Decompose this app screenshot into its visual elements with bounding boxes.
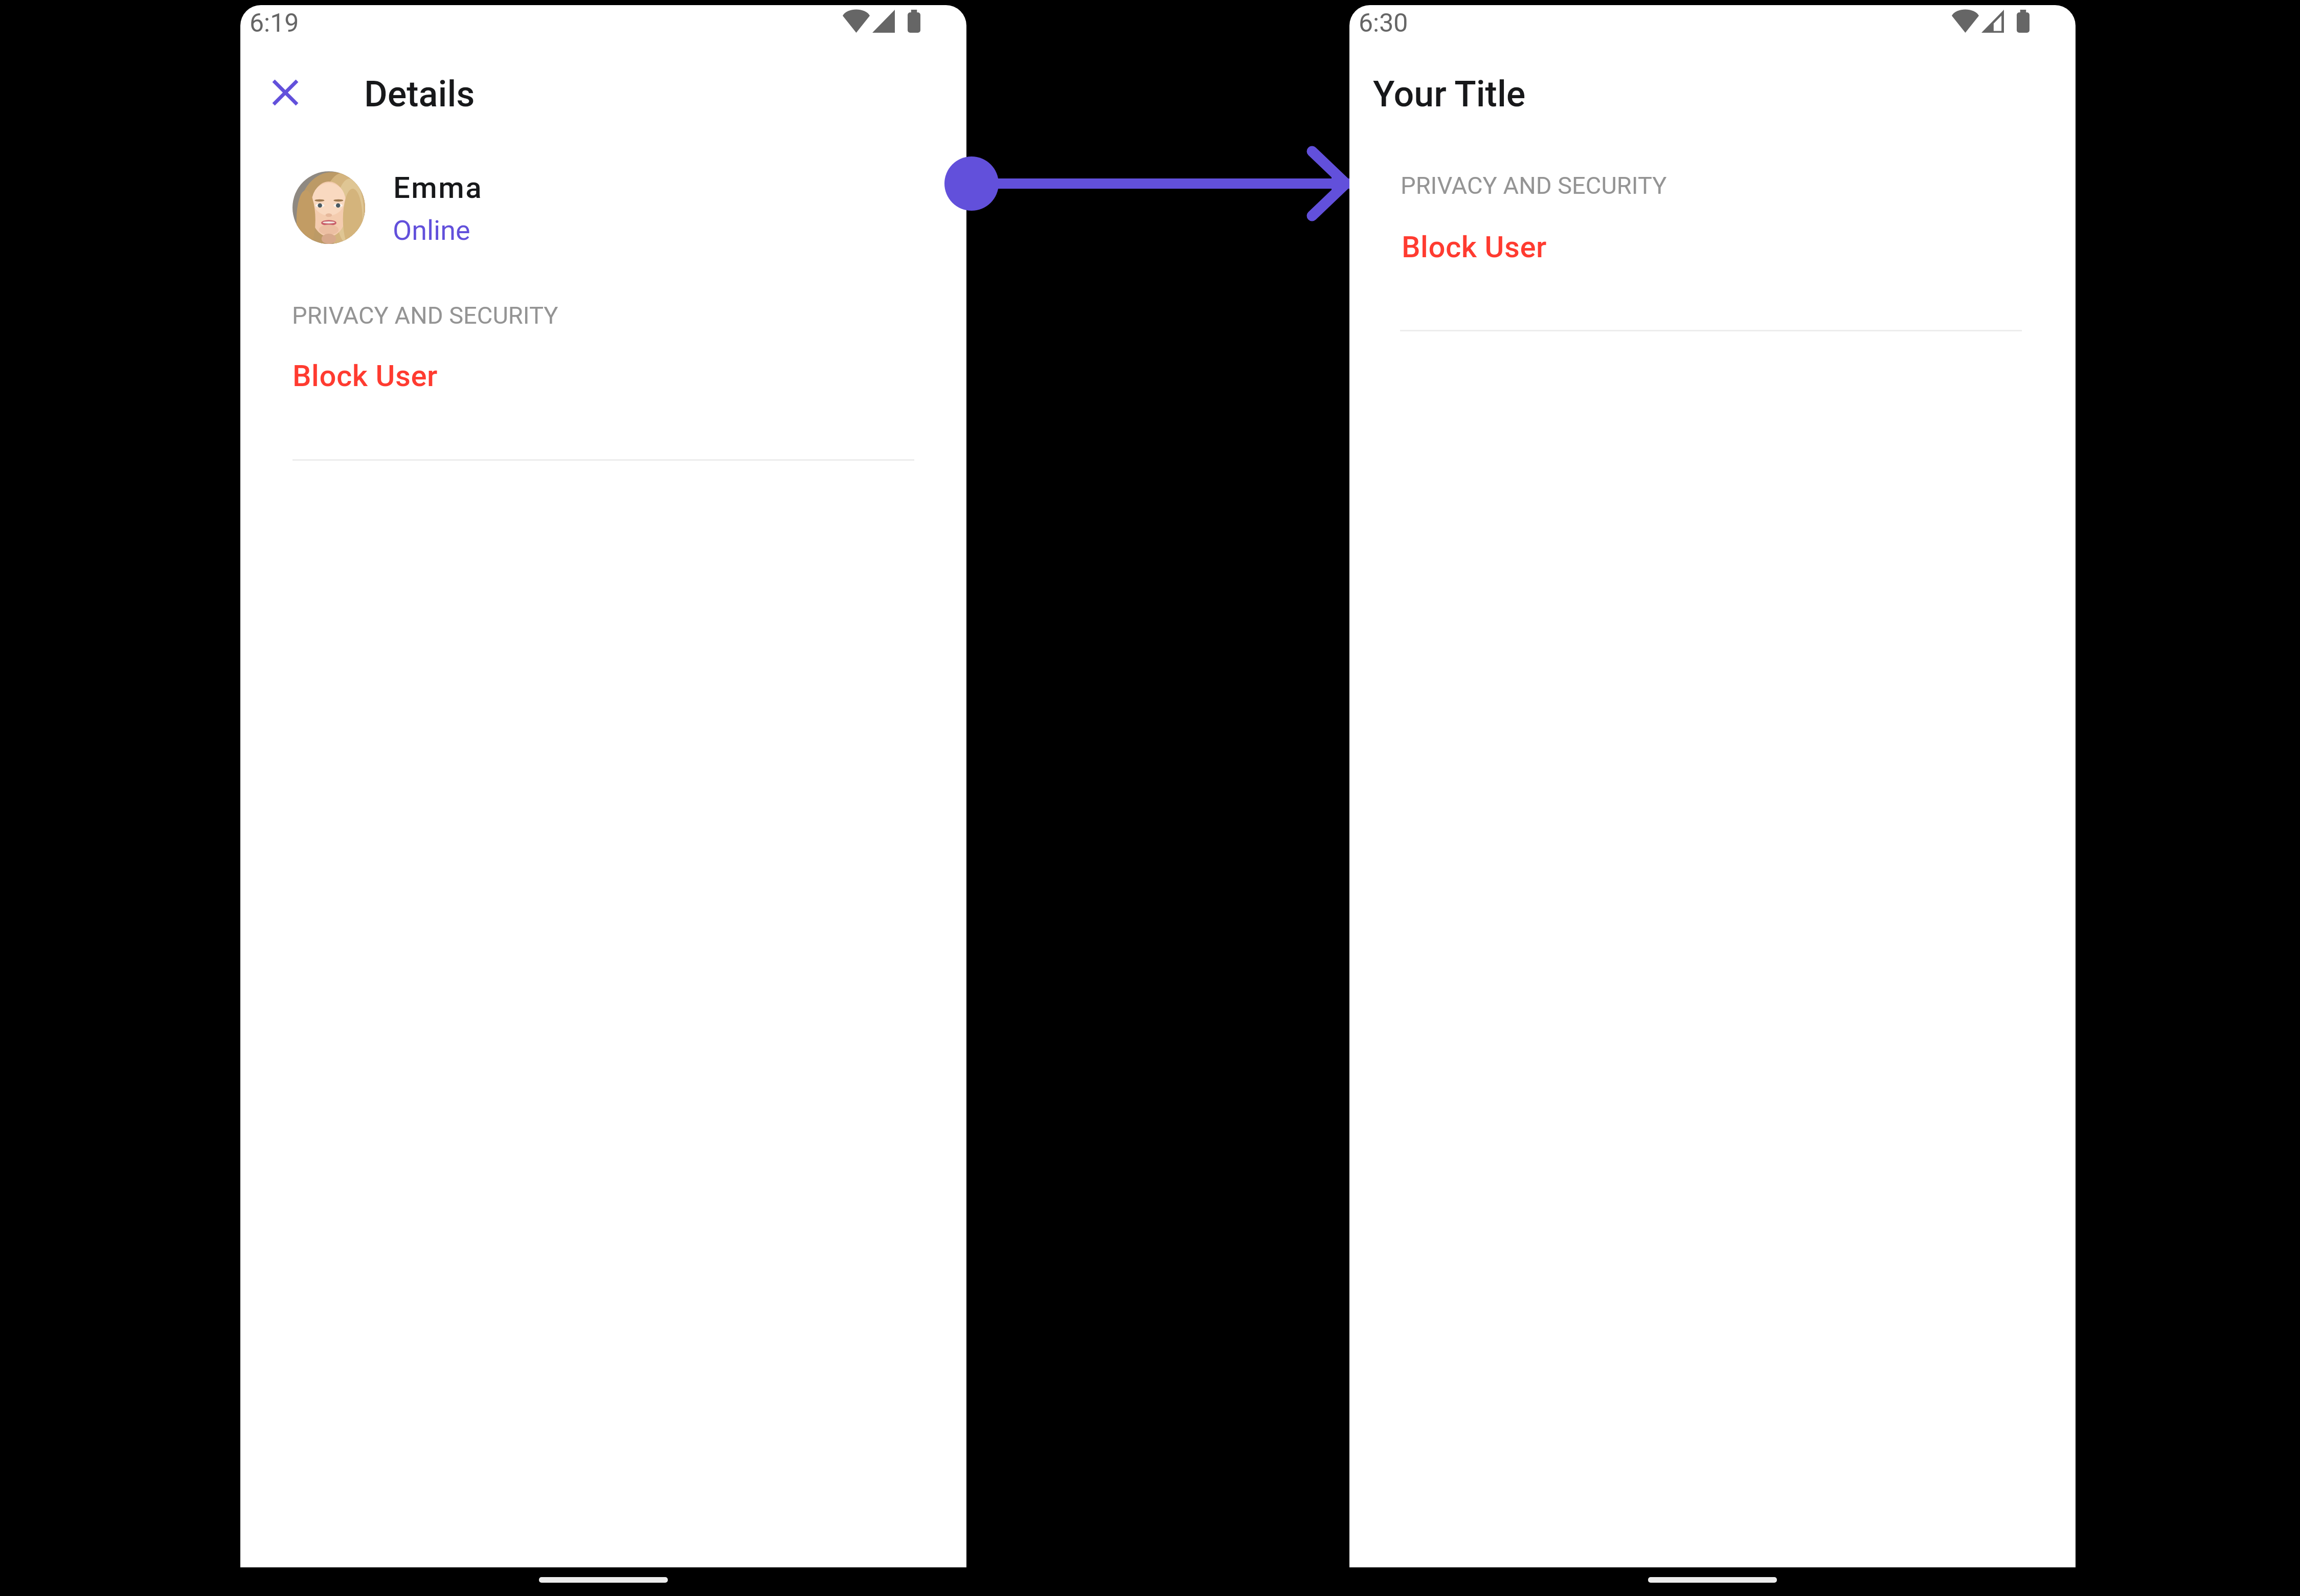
staticText: Emma xyxy=(393,170,483,205)
staticText: Online xyxy=(393,214,470,246)
button[interactable]: Close xyxy=(264,71,307,114)
button[interactable]: Block User xyxy=(1349,214,2076,285)
staticText: 6:19 xyxy=(250,8,299,38)
staticText: PRIVACY AND SECURITY xyxy=(292,301,558,329)
staticText: Block User xyxy=(1402,230,1547,264)
staticText: Block User xyxy=(292,358,438,393)
button[interactable]: Emma xyxy=(240,159,966,258)
staticText: PRIVACY AND SECURITY xyxy=(1401,171,1667,199)
staticText: Your Title xyxy=(1373,73,1526,115)
staticText: Details xyxy=(364,73,475,115)
button[interactable]: Block User xyxy=(240,343,966,414)
staticText: 6:30 xyxy=(1359,8,1408,38)
